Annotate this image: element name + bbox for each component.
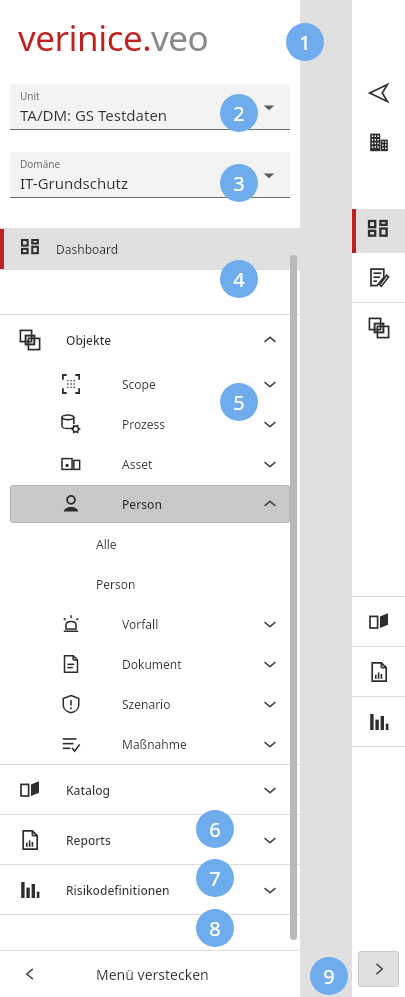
staticText: 2 [233,100,245,127]
button[interactable]: Dashboard [0,229,300,269]
staticText: Prozess [122,416,166,432]
staticText: Domäne [20,157,61,171]
button[interactable]: Maßnahme [0,724,300,764]
staticText: verinice.veo [18,14,209,62]
other: Open Unit dropdown [262,100,276,114]
staticText: Menü verstecken [96,965,209,984]
button[interactable]: Dokument [0,644,300,684]
button[interactable]: Reports [352,647,405,696]
staticText: 5 [233,389,245,416]
button[interactable]: Prozess [0,404,300,444]
staticText: Objekte [66,332,112,348]
button[interactable]: Katalog [0,765,300,814]
button[interactable]: Reports [0,815,300,864]
button[interactable]: Unit [352,117,405,166]
button[interactable]: Scope [0,364,300,404]
button[interactable]: Domäne [10,152,290,198]
staticText: Unit [20,89,40,103]
staticText: Alle [96,536,117,552]
staticText: Dokument [122,656,182,672]
button[interactable]: Szenario [0,684,300,724]
button[interactable]: Alle [0,524,300,564]
button[interactable]: Risikodefinitionen [0,865,300,914]
staticText: 4 [233,266,245,293]
staticText: Katalog [66,782,110,798]
staticText: Scope [122,376,156,392]
button[interactable]: Katalog [352,597,405,646]
button[interactable]: Edit [352,253,405,302]
button[interactable]: Unit [10,84,290,130]
staticText: Person [122,496,162,512]
staticText: Person [96,576,136,592]
button[interactable]: Person [0,564,300,604]
other: Open Domäne dropdown [262,168,276,182]
button[interactable]: Vorfall [0,604,300,644]
staticText: 9 [323,963,335,990]
button[interactable]: Dashboard [352,209,405,253]
button[interactable]: Asset [0,444,300,484]
staticText: Risikodefinitionen [66,882,170,898]
staticText: Asset [122,456,153,472]
staticText: 6 [209,816,221,843]
staticText: 7 [209,865,221,892]
staticText: Vorfall [122,616,159,632]
staticText: Dashboard [56,241,119,257]
button[interactable]: Objects [352,303,405,352]
staticText: 3 [233,170,245,197]
staticText: IT-Grundschutz [20,173,128,193]
button[interactable]: Show menu [358,951,399,987]
staticText: Szenario [122,696,171,712]
button[interactable]: Risk definitions [352,697,405,746]
button[interactable]: Menü verstecken [0,951,300,997]
staticText: 1 [299,29,311,56]
button[interactable]: Back [352,68,405,117]
button[interactable]: Person [10,485,290,523]
staticText: Maßnahme [122,736,187,752]
staticText: TA/DM: GS Testdaten [20,105,168,125]
staticText: 8 [209,915,221,942]
staticText: Reports [66,832,111,848]
button[interactable]: Objekte [0,315,300,364]
